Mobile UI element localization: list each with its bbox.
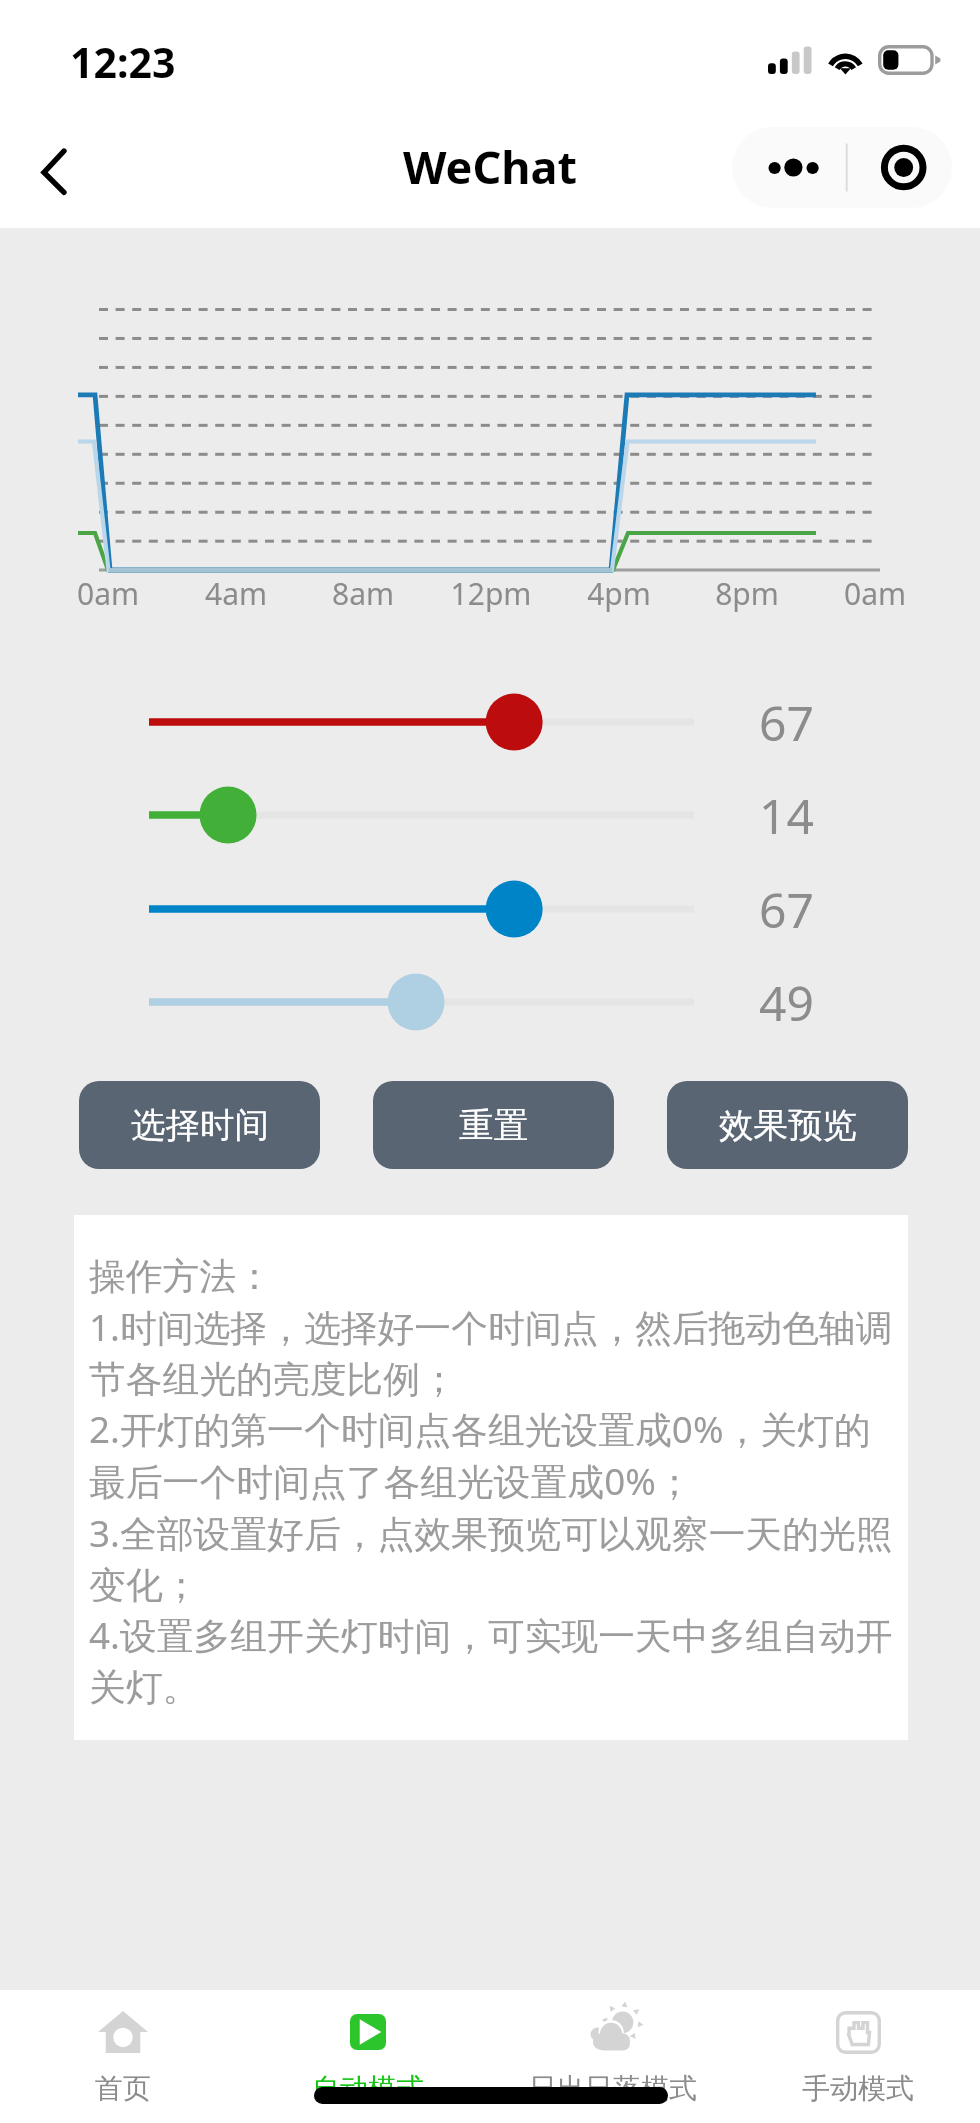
staticText: 12pm xyxy=(411,573,571,614)
button[interactable]: Brightness slider 49 xyxy=(0,956,980,1048)
staticText: 效果预览 xyxy=(719,1104,857,1147)
button[interactable]: 自动模式 xyxy=(245,1990,490,2123)
staticText: WeChat xyxy=(0,136,980,197)
staticText: 操作方法： 1.时间选择，选择好一个时间点，然后拖动色轴调节各组光的亮度比例； … xyxy=(89,1254,901,1710)
staticText: 自动模式 xyxy=(312,2071,424,2106)
staticText: 0am xyxy=(795,573,955,614)
staticText: 8am xyxy=(283,573,443,614)
staticText: 4am xyxy=(156,573,316,614)
button[interactable]: 日出日落模式 xyxy=(490,1990,735,2123)
staticText: 首页 xyxy=(95,2071,151,2106)
button[interactable]: Brightness slider 14 xyxy=(0,769,980,861)
staticText: 49 xyxy=(759,970,814,1035)
button[interactable]: Brightness slider 67 xyxy=(0,863,980,955)
staticText: 67 xyxy=(759,877,814,942)
staticText: 重置 xyxy=(459,1104,528,1147)
button[interactable]: More options xyxy=(732,127,952,208)
staticText: 0am xyxy=(28,573,188,614)
button[interactable]: 重置 xyxy=(373,1081,614,1169)
staticText: 手动模式 xyxy=(802,2071,914,2106)
staticText: 选择时间 xyxy=(131,1104,269,1147)
button[interactable]: 首页 xyxy=(0,1990,245,2123)
button[interactable]: 选择时间 xyxy=(79,1081,320,1169)
staticText: 日出日落模式 xyxy=(529,2071,697,2106)
staticText: 12:23 xyxy=(70,34,176,90)
button[interactable]: Back xyxy=(16,132,92,210)
staticText: 8pm xyxy=(667,573,827,614)
staticText: 67 xyxy=(759,690,814,755)
staticText: 4pm xyxy=(539,573,699,614)
button[interactable]: Brightness slider 67 xyxy=(0,676,980,768)
button[interactable]: 效果预览 xyxy=(667,1081,908,1169)
button[interactable]: 手动模式 xyxy=(735,1990,980,2123)
staticText: 14 xyxy=(759,783,814,848)
